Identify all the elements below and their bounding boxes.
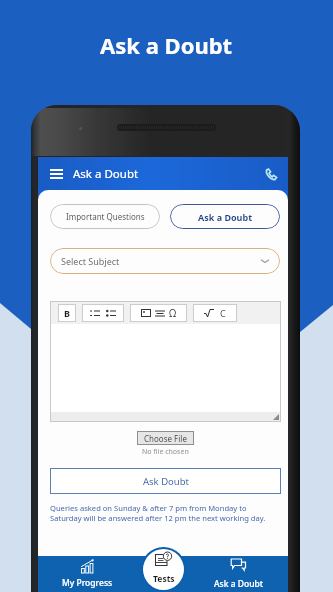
button[interactable]: C [193, 304, 237, 322]
staticText: Ask a Doubt [100, 30, 233, 60]
staticText: Important Questions [66, 211, 145, 222]
staticText: Ask Doubt [143, 475, 189, 488]
staticText: Tests [153, 573, 175, 585]
staticText: Ask a Doubt [73, 166, 139, 182]
staticText: Ask a Doubt [198, 211, 253, 223]
staticText: C [220, 307, 226, 319]
staticText: Select Subject [61, 255, 120, 267]
button[interactable]: Tests [143, 549, 184, 590]
button[interactable] [82, 304, 124, 322]
staticText: No file chosen [142, 447, 189, 457]
button[interactable]: Ask Doubt [50, 468, 281, 494]
button[interactable]: Important Questions [50, 204, 160, 229]
staticText: My Progress [62, 577, 113, 589]
staticText: Choose File [144, 433, 187, 444]
button[interactable]: Ω [130, 304, 187, 322]
button[interactable]: My Progress [38, 556, 137, 592]
button[interactable]: B [58, 304, 76, 322]
button[interactable]: Menu [47, 165, 65, 183]
staticText: B [64, 307, 70, 319]
button[interactable]: Call [261, 164, 281, 184]
staticText: Ω [169, 306, 177, 320]
button[interactable]: Select Subject [50, 248, 280, 274]
button[interactable]: Ask a Doubt [189, 556, 288, 592]
button[interactable]: Ask a Doubt [170, 204, 280, 229]
button[interactable]: Choose File [137, 431, 194, 445]
staticText: Ask a Doubt [214, 578, 263, 590]
staticText: Queries asked on Sunday & after 7 pm fro… [50, 503, 274, 523]
